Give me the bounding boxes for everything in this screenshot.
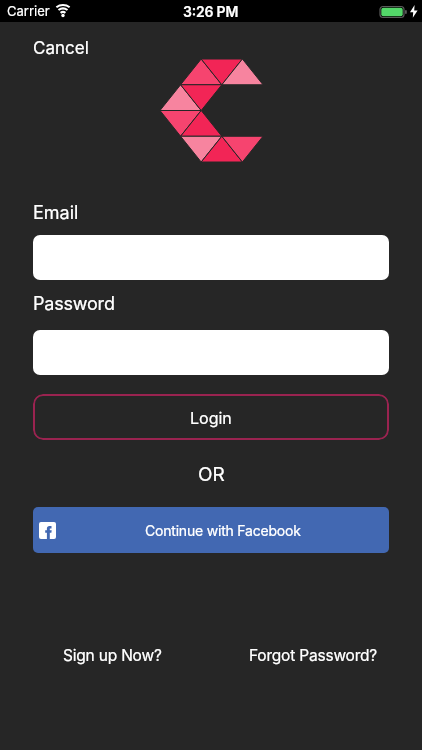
button[interactable]: Sign up Now? <box>63 646 162 665</box>
button[interactable]: Cancel <box>33 38 89 59</box>
staticText: Cancel <box>33 38 89 59</box>
button[interactable] <box>33 235 389 280</box>
button[interactable]: Continue with Facebook <box>33 507 389 553</box>
staticText: 3:26 PM <box>183 3 239 20</box>
staticText: Login <box>190 408 232 427</box>
staticText: Carrier <box>7 3 50 19</box>
button[interactable]: Forgot Password? <box>249 646 378 665</box>
staticText: Continue with Facebook <box>145 522 301 539</box>
staticText: Email <box>33 202 79 224</box>
staticText: Forgot Password? <box>249 646 378 665</box>
staticText: OR <box>198 463 225 486</box>
button[interactable] <box>33 330 389 375</box>
staticText: Sign up Now? <box>63 646 162 665</box>
staticText: Password <box>33 293 115 315</box>
button[interactable]: Login <box>33 394 389 440</box>
